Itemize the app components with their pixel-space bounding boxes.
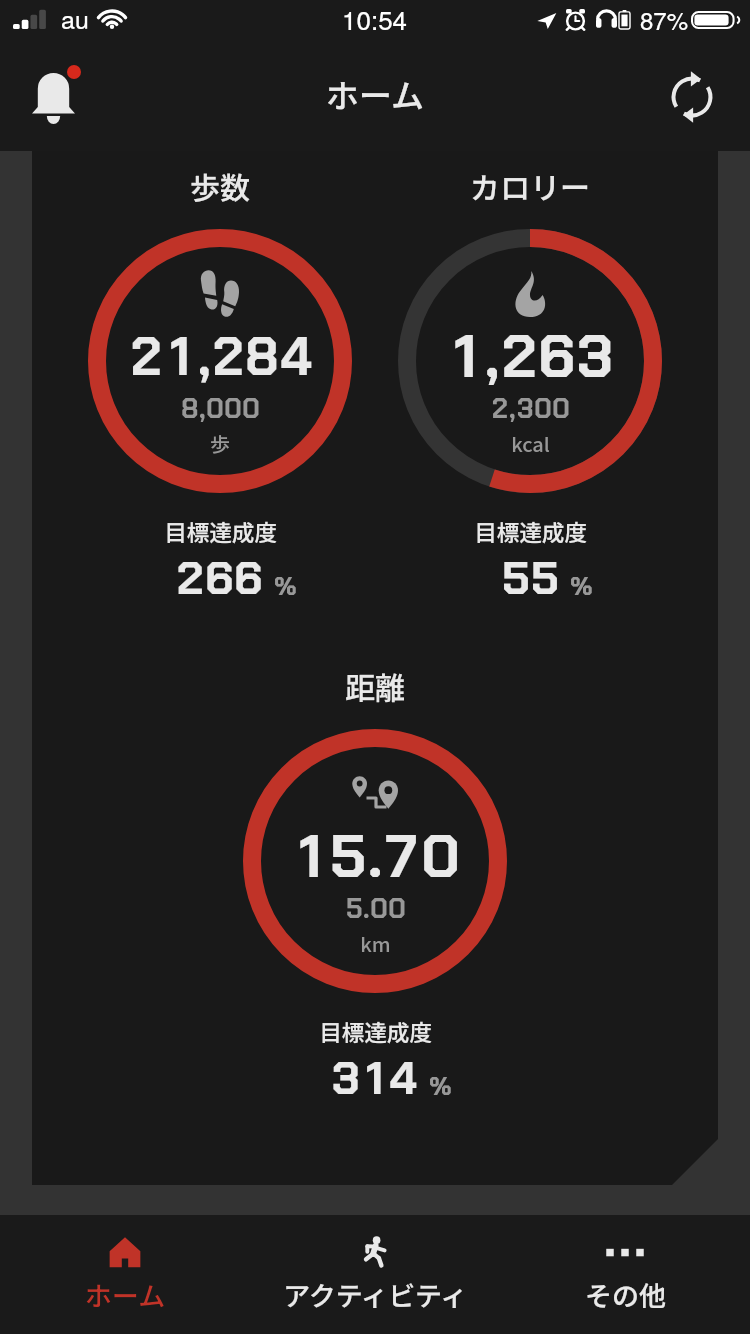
staticText: 2 <box>213 322 244 391</box>
staticText: 0 <box>370 891 388 927</box>
staticText: 10:54 <box>342 0 408 37</box>
staticText: アクティビティ <box>283 1275 468 1314</box>
staticText: 4 <box>390 1048 417 1108</box>
staticText: ホーム <box>85 1275 166 1314</box>
staticText: , <box>485 317 500 395</box>
staticText: % <box>274 569 297 603</box>
staticText: 目標達成度 <box>474 515 587 548</box>
staticText: 87% <box>640 2 689 36</box>
staticText: 0 <box>388 891 406 927</box>
staticText: 8 <box>245 322 279 391</box>
staticText: au <box>61 0 89 36</box>
staticText: 0 <box>552 391 570 427</box>
staticText: 8 <box>181 391 199 427</box>
staticText: 目標達成度 <box>319 1015 432 1048</box>
staticText: , <box>509 391 516 427</box>
staticText: , <box>199 391 206 427</box>
button[interactable]: Notifications <box>14 53 92 131</box>
staticText: 5 <box>330 817 367 895</box>
staticText: 3 <box>577 317 614 395</box>
button[interactable]: ホーム <box>0 1215 250 1334</box>
staticText: 3 <box>517 391 534 427</box>
button[interactable]: Refresh <box>656 61 730 135</box>
staticText: . <box>368 817 383 895</box>
staticText: 1 <box>366 1048 384 1108</box>
button[interactable]: アクティビティ <box>250 1215 500 1334</box>
staticText: 1 <box>454 317 477 395</box>
staticText: その他 <box>585 1275 666 1314</box>
staticText: 歩数 <box>190 164 250 207</box>
staticText: 0 <box>206 391 224 427</box>
staticText: 7 <box>386 817 418 895</box>
staticText: . <box>363 891 370 927</box>
staticText: 3 <box>332 1048 360 1108</box>
staticText: % <box>429 1069 452 1103</box>
staticText: 5 <box>502 548 530 608</box>
staticText: 4 <box>281 322 312 391</box>
staticText: 1 <box>299 817 322 895</box>
staticText: 2 <box>502 317 537 395</box>
staticText: 6 <box>205 548 234 608</box>
staticText: ホーム <box>326 70 425 118</box>
staticText: 歩 <box>210 429 230 458</box>
staticText: 2 <box>492 391 508 427</box>
staticText: 0 <box>242 391 260 427</box>
staticText: % <box>570 569 593 603</box>
staticText: , <box>198 322 211 391</box>
staticText: 2 <box>131 322 162 391</box>
button[interactable]: その他 <box>500 1215 750 1334</box>
staticText: 0 <box>534 391 552 427</box>
staticText: 1 <box>170 322 191 391</box>
staticText: 0 <box>224 391 242 427</box>
staticText: 6 <box>234 548 263 608</box>
staticText: kcal <box>511 429 550 458</box>
staticText: 距離 <box>345 664 405 707</box>
staticText: 5 <box>531 548 559 608</box>
staticText: 5 <box>346 891 363 927</box>
staticText: 目標達成度 <box>164 515 277 548</box>
staticText: km <box>360 929 391 958</box>
staticText: 6 <box>538 317 576 395</box>
staticText: 0 <box>421 817 459 895</box>
staticText: 2 <box>177 548 204 608</box>
staticText: カロリー <box>470 164 590 207</box>
